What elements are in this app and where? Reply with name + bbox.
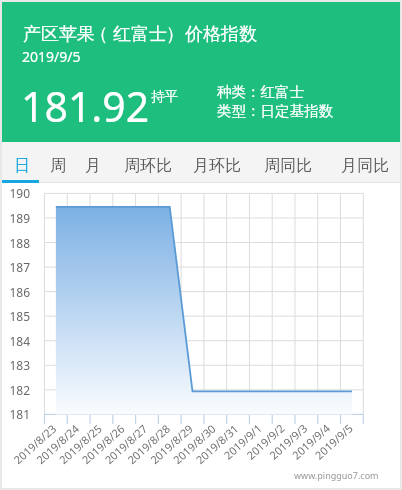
staticText: 持平 xyxy=(151,88,178,105)
staticText: 周同比 xyxy=(264,156,312,176)
staticText: 红富士 xyxy=(113,23,167,46)
staticText: 周环比 xyxy=(124,156,172,176)
staticText: 月同比 xyxy=(341,156,389,176)
staticText: 2019/9/5 xyxy=(22,47,81,66)
button[interactable]: 月 xyxy=(74,150,112,181)
button[interactable]: 月环比 xyxy=(182,150,252,181)
staticText: 类型：日定基指数 xyxy=(217,102,333,120)
staticText: 月 xyxy=(85,156,101,176)
staticText: 种类：红富士 xyxy=(217,83,304,101)
staticText: ） xyxy=(166,23,184,46)
staticText: 产区苹果 xyxy=(23,23,95,46)
button[interactable]: 周环比 xyxy=(113,150,183,181)
staticText: （ xyxy=(90,23,108,46)
staticText: 月环比 xyxy=(193,156,241,176)
button[interactable]: 日 xyxy=(3,150,41,181)
staticText: 181.92 xyxy=(21,78,150,134)
button[interactable]: 月同比 xyxy=(330,150,400,181)
staticText: 价格指数 xyxy=(185,23,257,46)
button[interactable]: 周 xyxy=(39,150,77,181)
staticText: 周 xyxy=(50,156,66,176)
button[interactable]: 周同比 xyxy=(253,150,323,181)
staticText: 日 xyxy=(14,156,30,176)
